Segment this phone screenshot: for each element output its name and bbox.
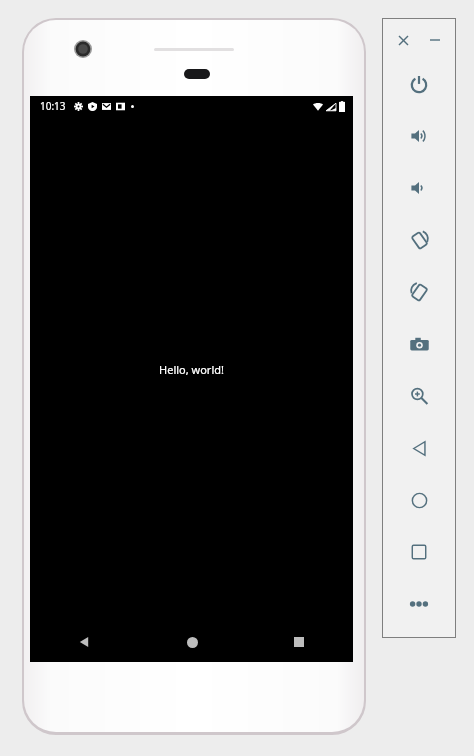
button[interactable]: Back (382, 422, 456, 474)
button[interactable]: More (382, 578, 456, 630)
button[interactable]: Volume down (382, 162, 456, 214)
button[interactable]: Zoom (382, 370, 456, 422)
button[interactable]: Take screenshot (382, 318, 456, 370)
button[interactable]: Recent apps (277, 622, 321, 662)
staticText: Hello, world! (159, 362, 224, 377)
button[interactable]: Volume up (382, 110, 456, 162)
button[interactable]: Minimize (424, 29, 446, 51)
staticText: 10:13 (40, 99, 66, 113)
button[interactable]: Home (170, 622, 214, 662)
button[interactable]: Rotate right (382, 266, 456, 318)
button[interactable]: Close (392, 29, 414, 51)
button[interactable]: Power (382, 58, 456, 110)
button[interactable]: Back (62, 622, 106, 662)
button[interactable]: Overview (382, 526, 456, 578)
button[interactable]: Rotate left (382, 214, 456, 266)
button[interactable]: Home (382, 474, 456, 526)
